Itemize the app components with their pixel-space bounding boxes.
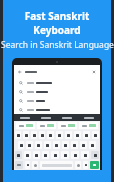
button[interactable] xyxy=(75,161,81,169)
button[interactable] xyxy=(51,151,59,159)
button[interactable] xyxy=(37,122,56,129)
button[interactable] xyxy=(14,87,100,96)
button[interactable] xyxy=(23,131,29,139)
button[interactable] xyxy=(35,141,42,149)
button[interactable] xyxy=(61,151,69,159)
button[interactable]: Space xyxy=(40,161,73,169)
button[interactable] xyxy=(71,141,78,149)
button[interactable] xyxy=(35,114,56,121)
button[interactable] xyxy=(15,131,21,139)
button[interactable] xyxy=(92,131,99,139)
button[interactable] xyxy=(33,151,40,159)
button[interactable] xyxy=(78,114,100,121)
button[interactable] xyxy=(65,131,72,139)
button[interactable] xyxy=(91,151,99,159)
button[interactable] xyxy=(14,105,100,114)
button[interactable] xyxy=(74,131,81,139)
button[interactable]: Enter xyxy=(90,161,99,169)
staticText: Search in Sanskrit Language xyxy=(1,39,114,51)
button[interactable]: Emoji xyxy=(32,161,38,169)
button[interactable] xyxy=(62,141,69,149)
other: Back xyxy=(18,70,22,74)
button[interactable] xyxy=(24,151,31,159)
button[interactable] xyxy=(83,131,90,139)
button[interactable] xyxy=(25,161,30,169)
staticText: Fast Sanskrit Keyboard xyxy=(0,9,114,37)
button[interactable] xyxy=(39,131,45,139)
button[interactable] xyxy=(56,114,78,121)
button[interactable] xyxy=(89,141,96,149)
other: Clear xyxy=(92,70,96,74)
button[interactable] xyxy=(58,122,77,129)
button[interactable] xyxy=(14,96,100,105)
button[interactable] xyxy=(71,151,79,159)
button[interactable] xyxy=(53,141,60,149)
button[interactable] xyxy=(26,141,33,149)
button[interactable] xyxy=(80,141,87,149)
button[interactable] xyxy=(14,114,35,121)
button[interactable] xyxy=(18,141,24,149)
button[interactable] xyxy=(47,131,54,139)
button[interactable] xyxy=(14,78,100,87)
button[interactable] xyxy=(31,131,37,139)
button[interactable] xyxy=(56,131,63,139)
button[interactable] xyxy=(16,122,35,129)
button[interactable] xyxy=(15,161,23,169)
button[interactable] xyxy=(79,122,98,129)
button[interactable] xyxy=(81,151,89,159)
button[interactable] xyxy=(42,151,49,159)
button[interactable] xyxy=(44,141,51,149)
button[interactable]: Back xyxy=(16,67,98,76)
button[interactable] xyxy=(15,151,22,159)
button[interactable] xyxy=(83,161,88,169)
